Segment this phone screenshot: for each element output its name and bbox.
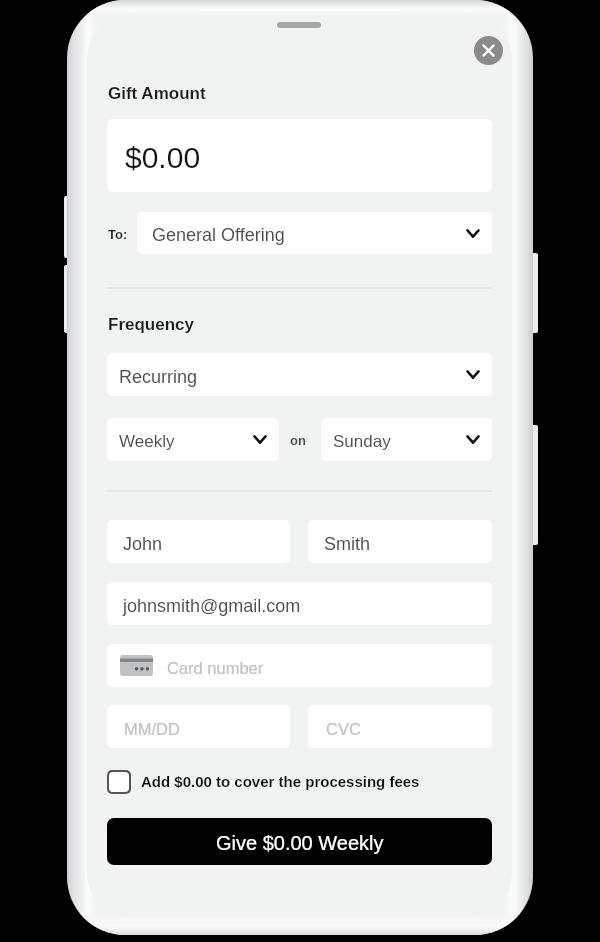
button[interactable]: Sunday (321, 418, 492, 461)
button[interactable]: MM/DD (107, 705, 290, 748)
button[interactable]: John (107, 520, 290, 563)
staticText: John (123, 534, 163, 554)
staticText: General Offering (152, 225, 285, 245)
button[interactable]: Card number (107, 644, 492, 687)
button[interactable]: Weekly (107, 418, 279, 461)
staticText: Add $0.00 to cover the processing fees (141, 773, 420, 790)
staticText: on (290, 433, 306, 448)
button[interactable]: General Offering (137, 212, 492, 254)
button[interactable]: Smith (308, 520, 492, 563)
staticText: Give $0.00 Weekly (216, 832, 384, 854)
staticText: johnsmith@gmail.com (123, 596, 301, 616)
button[interactable]: CVC (308, 705, 492, 748)
staticText: MM/DD (124, 720, 180, 738)
staticText: CVC (326, 720, 361, 738)
button[interactable]: johnsmith@gmail.com (107, 582, 492, 625)
button[interactable]: Close (474, 36, 503, 65)
button[interactable]: Give $0.00 Weekly (107, 818, 492, 865)
staticText: Gift Amount (108, 84, 206, 103)
staticText: Smith (324, 534, 371, 554)
staticText: Sunday (333, 432, 391, 451)
staticText: Card number (167, 659, 264, 677)
staticText: Recurring (119, 367, 198, 387)
staticText: Frequency (108, 315, 194, 334)
staticText: $0.00 (125, 141, 201, 175)
staticText: Weekly (119, 432, 175, 451)
button[interactable]: Recurring (107, 353, 492, 396)
button[interactable]: $0.00 (107, 119, 492, 192)
staticText: To: (108, 227, 128, 242)
button[interactable]: Add $0.00 to cover the processing fees (107, 769, 420, 794)
